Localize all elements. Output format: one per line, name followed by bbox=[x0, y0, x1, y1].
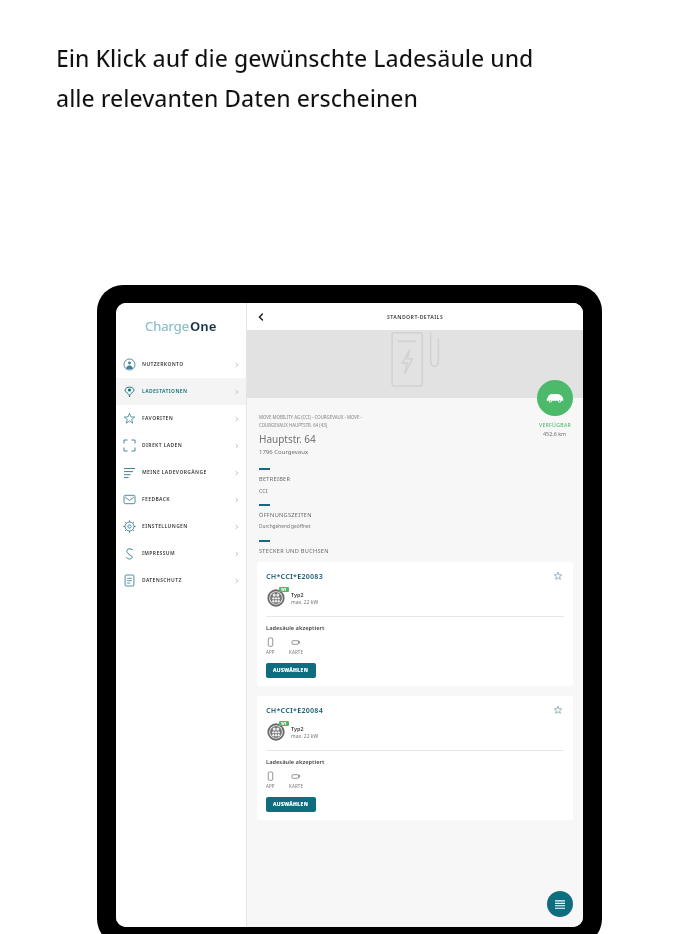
staticText: Durchgehend geöffnet bbox=[259, 523, 311, 530]
staticText: 1/1 bbox=[281, 721, 287, 726]
button[interactable]: EINSTELLUNGEN bbox=[116, 513, 246, 540]
button[interactable]: DATENSCHUTZ bbox=[116, 567, 246, 594]
staticText: FAVORITEN bbox=[142, 415, 174, 422]
staticText: COURGEVAUX HAUPTSTR. 64 (43) bbox=[259, 422, 327, 428]
staticText: Typ2 bbox=[291, 725, 304, 732]
staticText: DIREKT LADEN bbox=[142, 442, 183, 449]
staticText: LADESTATIONEN bbox=[142, 388, 188, 395]
staticText: DATENSCHUTZ bbox=[142, 577, 182, 584]
button[interactable]: IMPRESSUM bbox=[116, 540, 246, 567]
staticText: VERFÜGBAR bbox=[539, 421, 572, 428]
staticText: Ladesäule akzeptiert bbox=[266, 758, 325, 766]
staticText: FEEDBACK bbox=[142, 496, 171, 503]
staticText: KARTE bbox=[289, 783, 304, 789]
staticText: Typ2 bbox=[291, 591, 304, 598]
button[interactable]: AUSWÄHLEN bbox=[266, 663, 316, 678]
staticText: MEINE LADEVORGÄNGE bbox=[142, 469, 207, 476]
button[interactable]: FAVORITEN bbox=[116, 405, 246, 432]
staticText: Charge bbox=[145, 317, 190, 335]
staticText: CCI bbox=[259, 487, 268, 494]
button[interactable]: AUSWÄHLEN bbox=[266, 797, 316, 812]
staticText: NUTZERKONTO bbox=[142, 361, 184, 368]
staticText: 1/1 bbox=[281, 587, 287, 592]
staticText: max. 22 kW bbox=[291, 733, 319, 740]
staticText: AUSWÄHLEN bbox=[273, 801, 309, 808]
staticText: STECKER UND BUCHSEN bbox=[259, 547, 329, 555]
staticText: 1796 Courgevaux bbox=[259, 448, 309, 456]
staticText: CH*CCI*E20083 bbox=[266, 571, 323, 581]
staticText: 452.6 km bbox=[543, 430, 567, 437]
button[interactable]: MEINE LADEVORGÄNGE bbox=[116, 459, 246, 486]
button[interactable]: Favorit bbox=[552, 570, 564, 582]
staticText: STANDORT-DETAILS bbox=[387, 313, 444, 320]
staticText: MOVE MOBILITY AG (CCI) - COURGEVAUX - MO… bbox=[259, 414, 362, 420]
staticText: BETREIBER bbox=[259, 475, 291, 483]
staticText: AUSWÄHLEN bbox=[273, 667, 309, 674]
button[interactable]: FEEDBACK bbox=[116, 486, 246, 513]
button[interactable]: CH*CCI*E20084 bbox=[257, 696, 573, 820]
button[interactable]: LADESTATIONEN bbox=[116, 378, 246, 405]
staticText: Hauptstr. 64 bbox=[259, 432, 316, 446]
staticText: ÖFFNUNGSZEITEN bbox=[259, 511, 312, 519]
staticText: alle relevanten Daten erscheinen bbox=[56, 82, 418, 113]
staticText: Ladesäule akzeptiert bbox=[266, 624, 325, 632]
staticText: EINSTELLUNGEN bbox=[142, 523, 188, 530]
staticText: Ein Klick auf die gewünschte Ladesäule u… bbox=[56, 42, 534, 73]
button[interactable]: NUTZERKONTO bbox=[116, 351, 246, 378]
button[interactable]: Liste anzeigen bbox=[547, 891, 573, 917]
button[interactable]: Favorit bbox=[552, 704, 564, 716]
staticText: One bbox=[190, 317, 217, 335]
staticText: KARTE bbox=[289, 649, 304, 655]
staticText: CH*CCI*E20084 bbox=[266, 705, 323, 715]
button[interactable]: Zurück bbox=[253, 309, 269, 325]
button[interactable]: DIREKT LADEN bbox=[116, 432, 246, 459]
staticText: APP bbox=[266, 649, 275, 655]
staticText: APP bbox=[266, 783, 275, 789]
staticText: IMPRESSUM bbox=[142, 550, 176, 557]
staticText: max. 22 kW bbox=[291, 599, 319, 606]
button[interactable]: CH*CCI*E20083 bbox=[257, 562, 573, 686]
